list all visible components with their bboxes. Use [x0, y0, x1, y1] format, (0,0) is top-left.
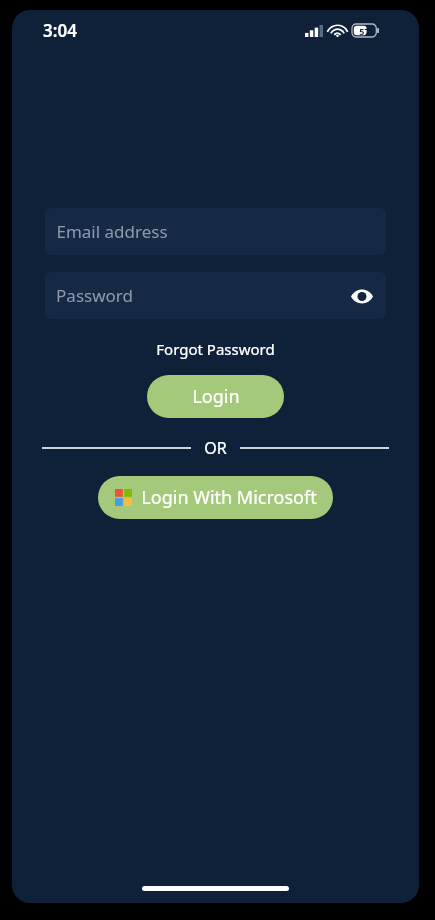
- button[interactable]: Login: [147, 375, 284, 418]
- button[interactable]: Email address: [45, 208, 386, 255]
- button[interactable]: Forgot Password: [150, 337, 281, 361]
- button[interactable]: Password: [45, 272, 386, 319]
- button[interactable]: Login With Microsoft: [98, 476, 333, 519]
- staticText: OR: [204, 437, 227, 459]
- staticText: 57: [359, 25, 370, 37]
- staticText: Login With Microsoft: [141, 485, 317, 510]
- staticText: Login: [192, 384, 240, 409]
- staticText: Forgot Password: [156, 339, 275, 359]
- staticText: 3:04: [43, 19, 77, 42]
- button[interactable]: Show password: [344, 278, 380, 314]
- staticText: Password: [56, 284, 133, 307]
- staticText: Email address: [56, 220, 168, 243]
